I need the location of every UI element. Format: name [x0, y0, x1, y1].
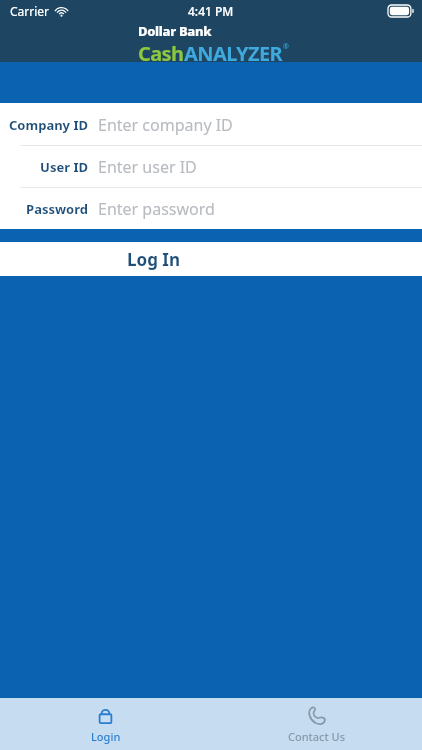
staticText: Cash	[138, 40, 184, 61]
staticText: 4:41 PM	[188, 3, 234, 19]
staticText: ®	[283, 42, 289, 52]
button[interactable]: Log In	[0, 242, 422, 276]
button[interactable]: Contact Us	[211, 705, 422, 744]
staticText: Enter password	[98, 198, 215, 220]
staticText: Login	[91, 729, 121, 744]
staticText: Company ID	[9, 116, 88, 134]
button[interactable]: Login	[0, 705, 211, 744]
staticText: Contact Us	[288, 729, 346, 744]
staticText: Log In	[127, 248, 180, 271]
staticText: User ID	[40, 158, 88, 176]
button[interactable]: Password	[0, 187, 422, 229]
staticText: Enter company ID	[98, 114, 233, 136]
staticText: Carrier	[10, 3, 50, 19]
button[interactable]: User ID	[0, 145, 422, 187]
staticText: ANALYZER	[184, 40, 283, 61]
staticText: Enter user ID	[98, 156, 197, 178]
button[interactable]: Company ID	[0, 103, 422, 145]
staticText: Password	[26, 200, 88, 218]
staticText: Dollar Bank	[138, 22, 212, 40]
